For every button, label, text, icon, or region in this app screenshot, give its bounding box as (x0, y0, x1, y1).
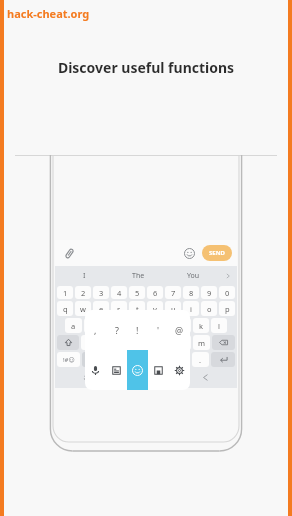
button[interactable]: !#☺ (57, 352, 80, 367)
button[interactable]: 7 (165, 286, 181, 299)
button[interactable]: Emoji (180, 244, 198, 262)
button[interactable]: Recents (57, 369, 117, 386)
button[interactable]: q (57, 301, 73, 316)
button[interactable]: i (183, 301, 199, 316)
button[interactable]: e (93, 301, 109, 316)
staticText: !#☺ (63, 356, 75, 364)
button[interactable]: 6 (147, 286, 163, 299)
button[interactable]: 2 (75, 286, 91, 299)
staticText: r (117, 304, 121, 314)
button[interactable]: You (166, 268, 221, 284)
staticText: m (198, 338, 206, 348)
button[interactable]: p (219, 301, 235, 316)
staticText: k (199, 321, 204, 331)
staticText: ' (157, 324, 160, 336)
staticText: . (199, 355, 202, 365)
button[interactable]: Keyboard settings (169, 350, 190, 390)
button[interactable]: ' (148, 310, 169, 350)
button[interactable]: The (111, 268, 166, 284)
staticText: ! (136, 324, 139, 336)
staticText: a (71, 321, 76, 331)
staticText: 5 (135, 288, 140, 298)
button[interactable]: r (111, 301, 127, 316)
staticText: 8 (189, 288, 194, 298)
staticText: j (182, 321, 184, 331)
button[interactable]: m (193, 335, 210, 350)
staticText: I (83, 271, 86, 281)
button[interactable]: SEND (202, 245, 232, 261)
staticText: The (132, 271, 145, 281)
button[interactable]: u (165, 301, 181, 316)
button[interactable]: Backspace (212, 335, 235, 350)
staticText: ? (115, 324, 119, 336)
button[interactable]: 1 (57, 286, 73, 299)
button[interactable]: Home (117, 369, 176, 386)
staticText: 9 (207, 288, 212, 298)
button[interactable]: h (157, 318, 173, 333)
staticText: t (136, 304, 139, 314)
staticText: 7 (171, 288, 176, 298)
button[interactable]: j (175, 318, 191, 333)
staticText: @ (175, 324, 184, 336)
staticText: hack-cheat.org (7, 6, 90, 21)
button[interactable]: More suggestions (221, 268, 235, 284)
button[interactable]: Settings (82, 352, 100, 367)
button[interactable]: Clipboard (106, 350, 127, 390)
button[interactable]: 8 (183, 286, 199, 299)
button[interactable]: Stickers (148, 350, 169, 390)
button[interactable]: I (57, 268, 111, 284)
button[interactable]: . (192, 352, 209, 367)
button[interactable]: ? (106, 310, 127, 350)
button[interactable]: Back (176, 369, 235, 386)
button[interactable]: a (65, 318, 82, 333)
staticText: 6 (153, 288, 158, 298)
button[interactable]: t (129, 301, 145, 316)
staticText: SEND (209, 249, 225, 257)
button[interactable]: @ (169, 310, 190, 350)
staticText: Discover useful functions (0, 58, 292, 77)
staticText: w (80, 304, 86, 314)
button[interactable]: ◂ English(US) ▸ (102, 352, 190, 367)
button[interactable]: Attach file (60, 244, 78, 262)
button[interactable]: 4 (111, 286, 127, 299)
button[interactable]: Voice input (85, 350, 106, 390)
button[interactable]: 0 (219, 286, 235, 299)
button[interactable]: y (147, 301, 163, 316)
button[interactable]: ! (127, 310, 148, 350)
button[interactable]: Enter (211, 352, 235, 367)
button[interactable]: 5 (129, 286, 145, 299)
button[interactable]: Shift (57, 335, 79, 350)
button[interactable]: o (201, 301, 217, 316)
button[interactable]: l (211, 318, 227, 333)
button[interactable]: w (75, 301, 91, 316)
staticText: o (207, 304, 212, 314)
button[interactable]: f (121, 318, 137, 333)
button[interactable]: 3 (93, 286, 109, 299)
staticText: p (225, 304, 230, 314)
button[interactable]: , (85, 310, 106, 350)
button[interactable]: Emoji (127, 350, 148, 390)
button[interactable]: d (103, 318, 119, 333)
staticText: 0 (225, 288, 230, 298)
staticText: 3 (99, 288, 104, 298)
button[interactable]: k (193, 318, 209, 333)
button[interactable]: 9 (201, 286, 217, 299)
staticText: i (190, 304, 192, 314)
